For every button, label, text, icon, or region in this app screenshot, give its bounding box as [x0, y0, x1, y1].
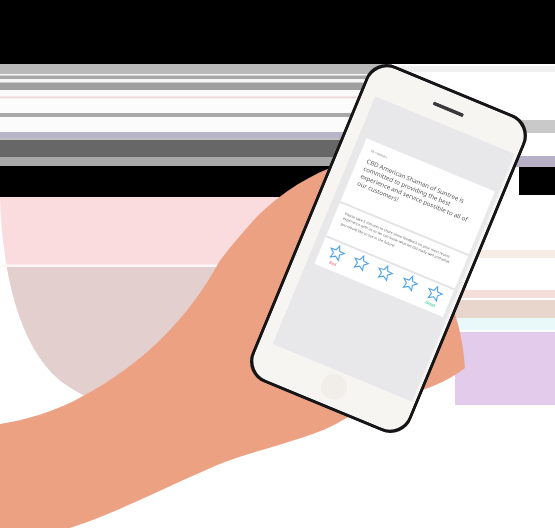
- staticText: Bad: [328, 260, 338, 267]
- staticText: Please take 5 minutes to share some feed…: [340, 211, 458, 272]
- staticText: Hi <name>,: [370, 148, 390, 160]
- button[interactable]: Rate 2: [341, 248, 376, 285]
- staticText: Great: [424, 299, 437, 308]
- button[interactable]: Rate 1: [317, 238, 352, 275]
- button[interactable]: Rate 4: [390, 268, 426, 305]
- button[interactable]: Rate 5: [415, 279, 451, 316]
- button[interactable]: Rate 3: [365, 258, 401, 295]
- button[interactable]: Home: [317, 370, 351, 404]
- staticText: CBD American Shaman of Suntree is commit…: [356, 156, 480, 232]
